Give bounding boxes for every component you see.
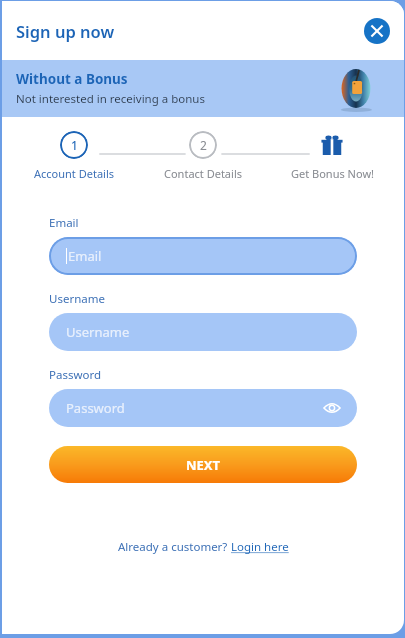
button[interactable]: 1: [18, 131, 130, 181]
button[interactable]: Email: [49, 237, 357, 275]
staticText: Sign up now: [16, 20, 115, 42]
button[interactable]: Password: [49, 389, 357, 427]
staticText: 2: [200, 137, 207, 153]
staticText: Email: [49, 215, 79, 231]
button[interactable]: Close: [364, 18, 390, 44]
staticText: Already a customer?: [118, 539, 231, 555]
button[interactable]: 2: [147, 131, 259, 181]
staticText: Login here: [231, 539, 289, 555]
staticText: Account Details: [34, 166, 114, 181]
other: Get Bonus Now: [318, 131, 346, 159]
staticText: Contact Details: [164, 166, 242, 181]
button[interactable]: Login here: [231, 539, 289, 555]
button[interactable]: Without a Bonus: [2, 60, 404, 117]
staticText: NEXT: [186, 456, 221, 474]
staticText: Email: [68, 247, 102, 265]
staticText: Password: [66, 399, 125, 417]
staticText: Password: [49, 367, 102, 383]
button[interactable]: Username: [49, 313, 357, 351]
staticText: Get Bonus Now!: [291, 166, 374, 181]
staticText: Username: [66, 323, 130, 341]
staticText: Username: [49, 291, 105, 307]
staticText: Not interested in receiving a bonus: [16, 91, 205, 107]
button[interactable]: Get Bonus Now: [276, 131, 388, 181]
staticText: 1: [71, 137, 78, 153]
staticText: Without a Bonus: [16, 70, 128, 88]
button[interactable]: Show password: [321, 397, 343, 419]
button[interactable]: NEXT: [49, 446, 357, 483]
